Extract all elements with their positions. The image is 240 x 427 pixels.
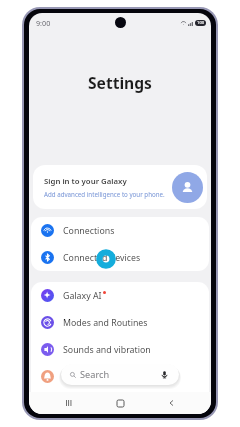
button[interactable]: Sounds and vibration bbox=[31, 336, 209, 363]
staticText: 9:00 bbox=[36, 18, 51, 28]
button[interactable]: Display bbox=[31, 390, 209, 414]
staticText: Galaxy AI bbox=[63, 290, 102, 302]
button[interactable]: Search bbox=[61, 364, 179, 385]
staticText: Search bbox=[80, 368, 110, 381]
staticText: Sounds and vibration bbox=[63, 344, 151, 356]
button[interactable]: Sign in to your Galaxy bbox=[33, 165, 207, 209]
button[interactable]: Notifications bbox=[31, 363, 209, 390]
staticText: Connections bbox=[63, 225, 115, 237]
staticText: Connected devices bbox=[63, 252, 141, 264]
button[interactable]: Back bbox=[160, 392, 182, 414]
staticText: 100 bbox=[197, 20, 205, 26]
button[interactable]: Home bbox=[109, 392, 131, 414]
button[interactable]: Voice search bbox=[160, 370, 169, 379]
staticText: Settings bbox=[88, 72, 152, 93]
staticText: Modes and Routines bbox=[63, 317, 148, 329]
staticText: Sign in to your Galaxy bbox=[44, 176, 127, 187]
button[interactable]: Modes and Routines bbox=[31, 309, 209, 336]
staticText: Notifications bbox=[63, 371, 116, 383]
button[interactable]: Galaxy AI bbox=[31, 282, 209, 309]
button[interactable]: Connections bbox=[31, 217, 209, 244]
staticText: Add advanced intelligence to your phone. bbox=[44, 190, 165, 198]
button[interactable]: Connected devices bbox=[31, 244, 209, 271]
button[interactable]: Recents bbox=[58, 392, 80, 414]
staticText: Display bbox=[63, 396, 94, 408]
